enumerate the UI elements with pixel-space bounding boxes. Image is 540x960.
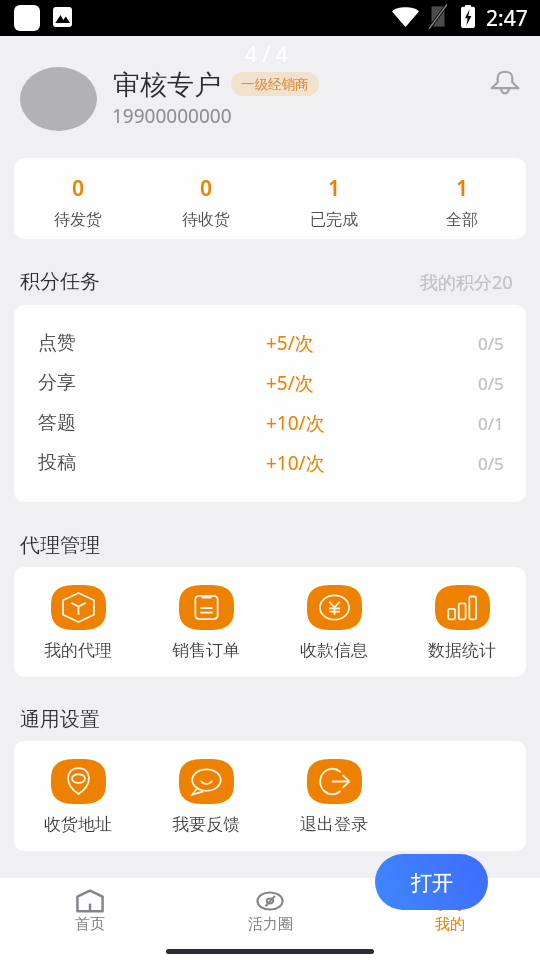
staticText: 我要反馈 [172,814,240,835]
button[interactable]: 0 [14,158,142,239]
staticText: 收款信息 [300,640,368,661]
staticText: 销售订单 [172,640,240,661]
staticText: 1 [328,174,341,203]
staticText: 我的代理 [44,640,112,661]
staticText: 待收货 [182,210,230,230]
staticText: 点赞 [38,331,76,355]
staticText: 首页 [75,915,105,934]
staticText: 收货地址 [44,814,112,835]
button[interactable]: 退出登录 [270,741,398,851]
button[interactable]: 首页 [0,878,180,938]
staticText: +10/次 [266,450,325,476]
staticText: 0 [72,174,85,203]
staticText: 4 / 4 [245,40,288,69]
button[interactable]: 打开 [375,854,488,910]
staticText: 我的积分20 [420,270,513,295]
staticText: 投稿 [38,451,76,475]
button[interactable]: 投稿 [14,443,526,483]
staticText: 待发货 [54,210,102,230]
staticText: 0/1 [478,412,504,435]
button[interactable]: 0 [142,158,270,239]
staticText: 打开 [411,870,453,896]
staticText: 19900000000 [112,103,232,129]
staticText: 0/5 [478,372,504,395]
button[interactable]: 1 [398,158,526,239]
button[interactable]: 我要反馈 [142,741,270,851]
staticText: 代理管理 [20,533,100,558]
staticText: 积分任务 [20,269,100,294]
staticText: +5/次 [266,370,314,396]
staticText: 退出登录 [300,814,368,835]
staticText: 一级经销商 [241,76,309,93]
button[interactable]: 数据统计 [398,567,526,677]
staticText: 通用设置 [20,707,100,732]
staticText: +10/次 [266,410,325,436]
button[interactable]: 我的 [360,878,540,938]
staticText: 0/5 [478,332,504,355]
staticText: 0 [200,174,213,203]
staticText: 我的 [435,915,465,934]
staticText: 已完成 [310,210,358,230]
staticText: 1 [456,174,469,203]
button[interactable]: 1 [270,158,398,239]
staticText: 数据统计 [428,640,496,661]
button[interactable]: 收款信息 [270,567,398,677]
button[interactable]: 我的代理 [14,567,142,677]
button[interactable]: 分享 [14,363,526,403]
staticText: 全部 [446,210,478,230]
staticText: +5/次 [266,330,314,356]
staticText: 分享 [38,371,76,395]
button[interactable]: Notifications [484,60,526,102]
staticText: 2:47 [486,4,528,33]
staticText: 0/5 [478,452,504,475]
button[interactable]: 收货地址 [14,741,142,851]
staticText: 审核专户 [113,68,221,102]
button[interactable]: Avatar [20,67,97,131]
button[interactable]: 点赞 [14,323,526,363]
staticText: 活力圈 [248,915,293,934]
button[interactable]: 活力圈 [180,878,360,938]
button[interactable]: 答题 [14,403,526,443]
button[interactable]: 销售订单 [142,567,270,677]
staticText: 答题 [38,411,76,435]
